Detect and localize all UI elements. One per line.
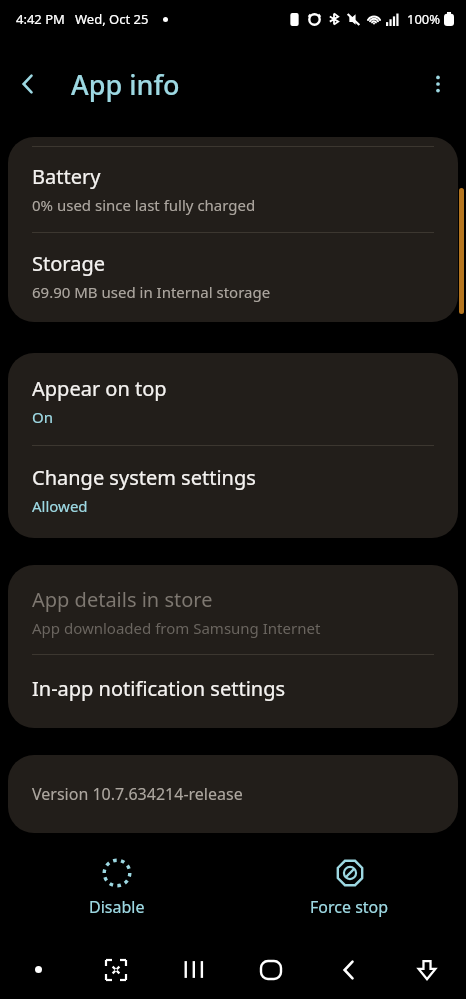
button[interactable]: Notification dot xyxy=(0,940,77,999)
button[interactable]: Disable xyxy=(0,840,233,940)
button[interactable]: More options xyxy=(410,56,466,112)
staticText: Battery xyxy=(32,163,101,190)
staticText: App info xyxy=(71,66,180,103)
staticText: 0% used since last fully charged xyxy=(32,195,256,215)
button[interactable]: Battery xyxy=(8,147,458,232)
button[interactable]: Shrink screen xyxy=(77,940,154,999)
button[interactable]: Back xyxy=(0,56,56,112)
staticText: Change system settings xyxy=(32,464,256,491)
staticText: App downloaded from Samsung Internet xyxy=(32,618,321,638)
staticText: Force stop xyxy=(310,896,389,918)
button[interactable]: Recents xyxy=(154,940,232,999)
staticText: On xyxy=(32,407,53,427)
staticText: 100% xyxy=(407,10,441,28)
staticText: Storage xyxy=(32,250,105,277)
button[interactable]: Storage xyxy=(8,233,458,322)
button[interactable]: In-app notification settings xyxy=(8,655,458,728)
staticText: Wed, Oct 25 xyxy=(75,10,149,28)
staticText: Allowed xyxy=(32,496,88,516)
button[interactable]: Appear on top xyxy=(8,353,458,445)
button[interactable]: Force stop xyxy=(233,840,466,940)
staticText: Disable xyxy=(89,896,145,918)
staticText: 69.90 MB used in Internal storage xyxy=(32,282,271,302)
button[interactable]: Change system settings xyxy=(8,446,458,538)
button[interactable]: Home xyxy=(232,940,310,999)
staticText: Appear on top xyxy=(32,375,167,402)
button[interactable]: Back xyxy=(310,940,388,999)
staticText: 4:42 PM xyxy=(16,10,65,28)
button[interactable]: Hide keyboard xyxy=(388,940,466,999)
staticText: In-app notification settings xyxy=(32,675,286,702)
button[interactable]: App details in store xyxy=(8,565,458,654)
staticText: Version 10.7.634214-release xyxy=(32,783,243,805)
staticText: App details in store xyxy=(32,586,213,613)
button[interactable]: Version 10.7.634214-release xyxy=(8,755,458,833)
